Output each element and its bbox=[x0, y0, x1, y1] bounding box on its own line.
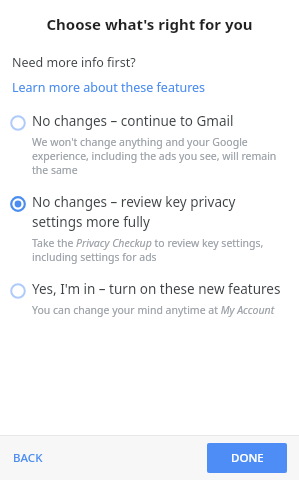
staticText: Need more info first? bbox=[12, 54, 136, 71]
staticText: Take the Privacy Checkup to review key s… bbox=[32, 236, 287, 264]
staticText: DONE bbox=[231, 450, 264, 466]
staticText: You can change your mind anytime at My A… bbox=[32, 303, 275, 317]
staticText: Learn more about these features bbox=[12, 79, 206, 96]
button[interactable]: No changes – continue to Gmail bbox=[0, 112, 299, 177]
staticText: No changes – review key privacy settings… bbox=[32, 193, 287, 231]
staticText: No changes – continue to Gmail bbox=[32, 112, 234, 130]
button[interactable]: Yes, I'm in – turn on these new features bbox=[0, 280, 299, 317]
button[interactable]: BACK bbox=[6, 443, 50, 473]
staticText: BACK bbox=[13, 450, 43, 466]
button[interactable]: No changes – review key privacy settings… bbox=[0, 193, 299, 264]
button[interactable]: DONE bbox=[207, 443, 287, 473]
button[interactable]: Learn more about these features bbox=[0, 79, 218, 96]
staticText: We won't change anything and your Google… bbox=[32, 135, 287, 177]
staticText: Choose what's right for you bbox=[46, 14, 253, 34]
staticText: Yes, I'm in – turn on these new features bbox=[32, 280, 281, 298]
